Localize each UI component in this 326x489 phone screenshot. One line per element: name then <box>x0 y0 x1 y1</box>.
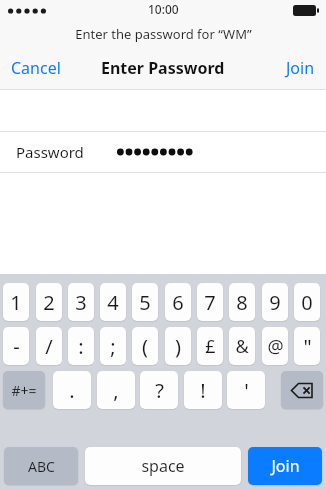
button[interactable]: Cancel <box>0 49 72 87</box>
button[interactable]: / <box>36 327 62 365</box>
button[interactable]: , <box>97 371 135 409</box>
staticText: ( <box>142 333 148 360</box>
button[interactable]: ; <box>100 327 126 365</box>
staticText: : <box>78 333 84 360</box>
staticText: Join <box>271 455 300 477</box>
staticText: space <box>141 455 185 477</box>
staticText: 6 <box>172 289 184 316</box>
staticText: 4 <box>107 289 119 316</box>
staticText: 7 <box>204 289 216 316</box>
button[interactable]: & <box>229 327 255 365</box>
button[interactable]: 3 <box>68 283 94 321</box>
staticText: , <box>113 377 119 404</box>
button[interactable]: : <box>68 327 94 365</box>
button[interactable]: . <box>53 371 91 409</box>
button[interactable]: 1 <box>3 283 29 321</box>
staticText: 10:00 <box>148 1 179 17</box>
button[interactable]: 5 <box>132 283 158 321</box>
staticText: ? <box>155 377 164 404</box>
staticText: ) <box>175 333 181 360</box>
staticText: 3 <box>75 289 87 316</box>
button[interactable]: ABC <box>4 447 78 485</box>
button[interactable]: 6 <box>165 283 191 321</box>
staticText: 9 <box>269 289 281 316</box>
staticText: 1 <box>10 289 22 316</box>
staticText: ! <box>200 377 206 404</box>
button[interactable]: 4 <box>100 283 126 321</box>
button[interactable]: " <box>294 327 320 365</box>
button[interactable]: ! <box>184 371 222 409</box>
staticText: #+= <box>11 381 37 400</box>
button[interactable]: 7 <box>197 283 223 321</box>
button[interactable]: space <box>85 447 241 485</box>
staticText: ; <box>110 333 116 360</box>
button[interactable]: 9 <box>262 283 288 321</box>
staticText: Enter Password <box>101 57 225 79</box>
button[interactable]: £ <box>197 327 223 365</box>
staticText: @ <box>267 334 284 359</box>
staticText: 0 <box>301 289 313 316</box>
staticText: ABC <box>28 457 55 476</box>
button[interactable]: ' <box>227 371 265 409</box>
staticText: 5 <box>139 289 151 316</box>
staticText: - <box>13 333 20 360</box>
button[interactable]: 0 <box>294 283 320 321</box>
staticText: & <box>235 334 249 359</box>
button[interactable]: 2 <box>36 283 62 321</box>
button[interactable]: ? <box>140 371 178 409</box>
button[interactable]: Password <box>0 132 326 172</box>
button[interactable]: Join <box>248 447 322 485</box>
staticText: " <box>303 333 312 360</box>
staticText: 2 <box>43 289 55 316</box>
button[interactable]: 8 <box>229 283 255 321</box>
button[interactable]: #+= <box>3 371 45 409</box>
button[interactable]: - <box>3 327 29 365</box>
staticText: Password <box>16 142 84 162</box>
staticText: Join <box>286 57 315 79</box>
staticText: . <box>69 377 75 404</box>
staticText: £ <box>205 334 216 359</box>
button[interactable]: ) <box>165 327 191 365</box>
staticText: Enter the password for “WM” <box>75 25 252 43</box>
staticText: 8 <box>236 289 248 316</box>
button[interactable]: ( <box>132 327 158 365</box>
button[interactable]: @ <box>262 327 288 365</box>
staticText: ' <box>244 377 249 404</box>
staticText: / <box>45 333 53 360</box>
button[interactable]: Backspace <box>281 371 323 409</box>
button[interactable]: Join <box>275 49 326 87</box>
staticText: Cancel <box>11 57 61 79</box>
